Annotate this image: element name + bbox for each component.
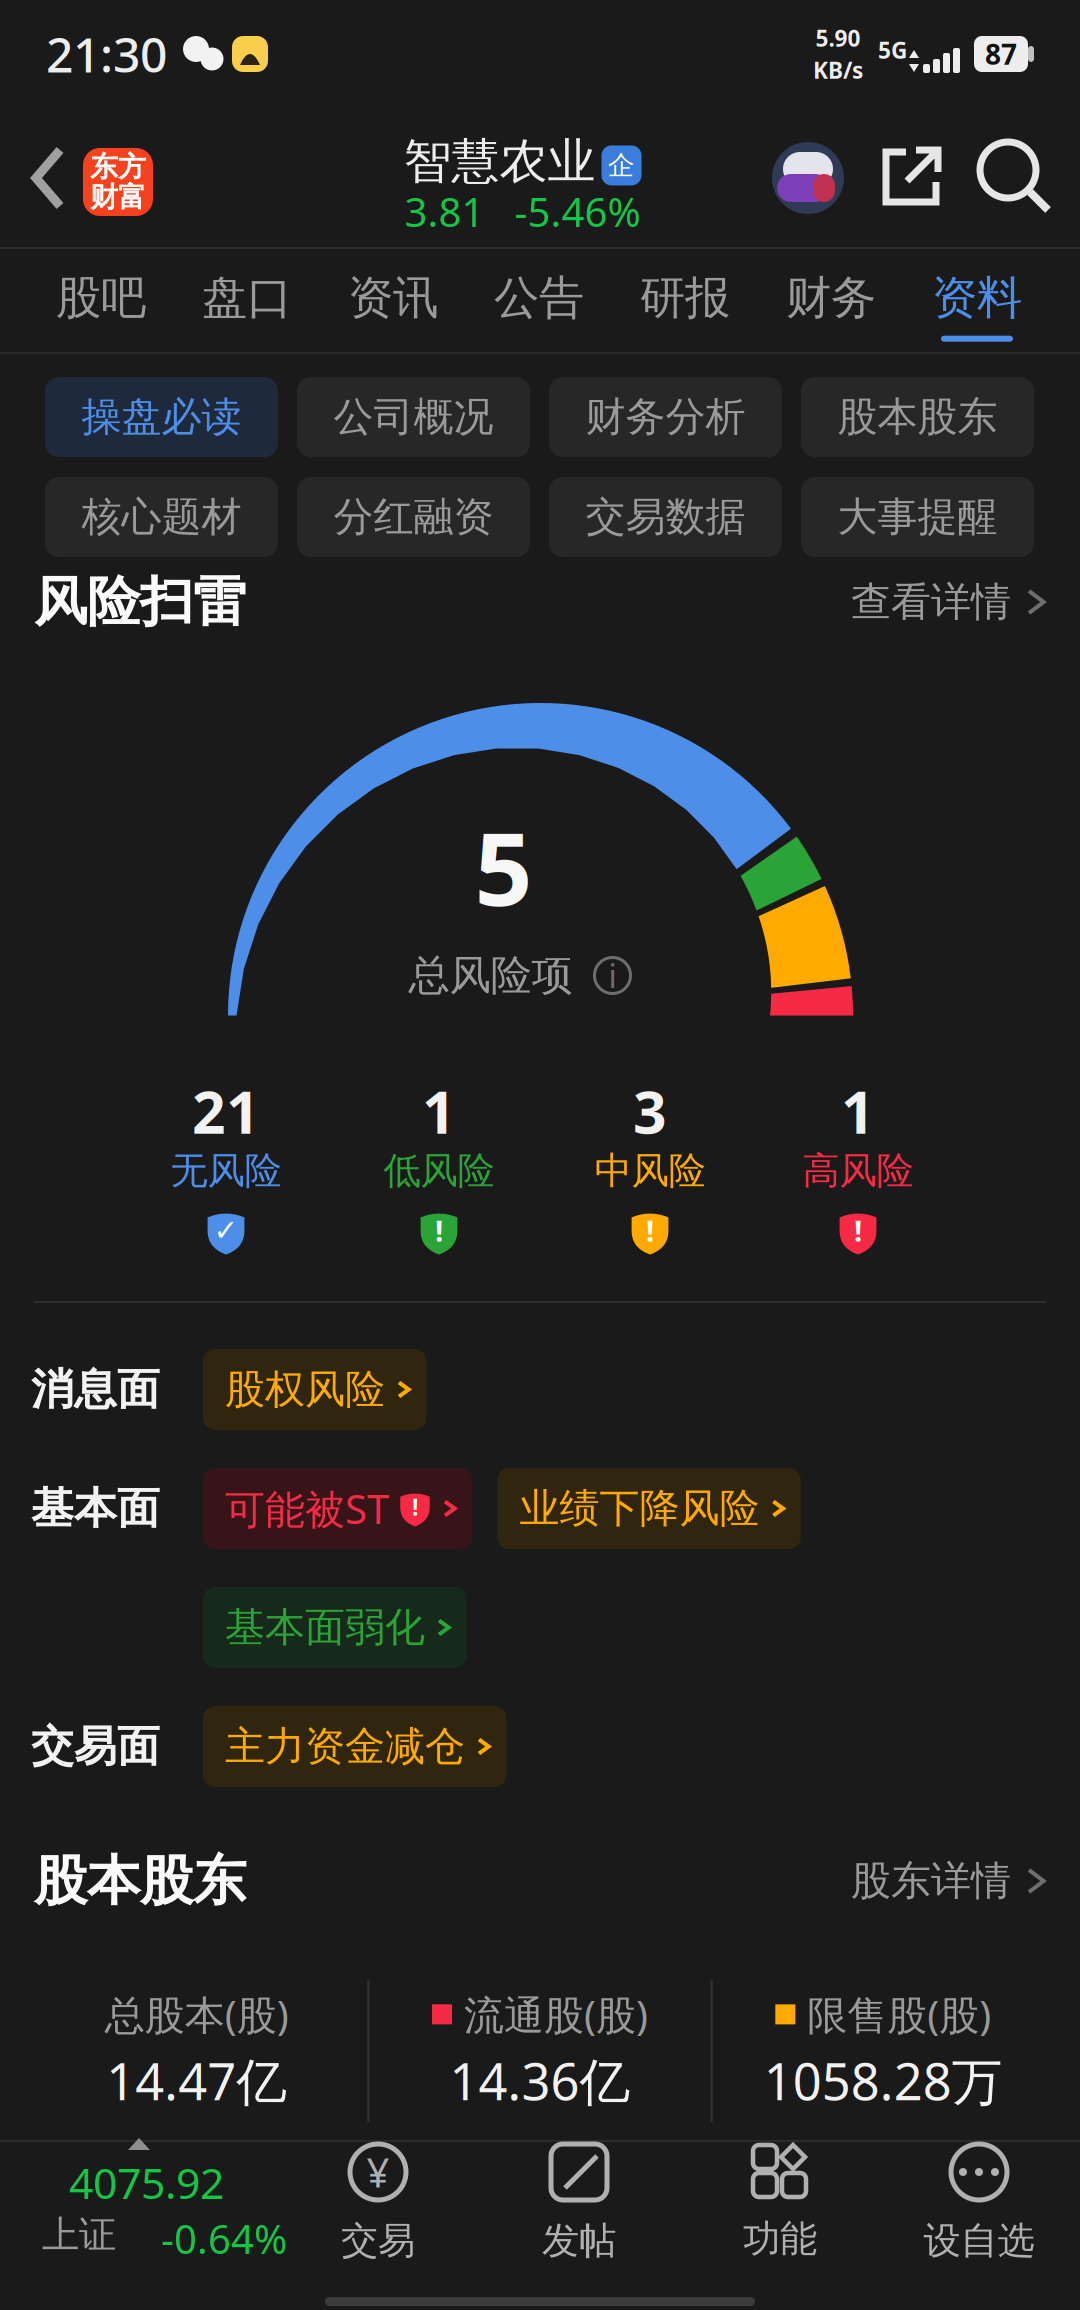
button[interactable]: 可能被ST [203,1468,472,1549]
staticText: 盘口 [202,270,292,326]
staticText: 股吧 [56,270,146,326]
staticText: 交易 [341,2218,415,2264]
staticText: 股权风险 [225,1365,385,1414]
staticText: 可能被ST [225,1482,389,1535]
button[interactable]: 交易数据 [549,477,782,557]
staticText: 5G [878,35,907,65]
staticText: KB/s [813,55,863,85]
staticText: 1 [841,1072,875,1150]
button[interactable]: 资讯 [320,270,466,342]
button[interactable]: 公司概况 [297,377,530,457]
button[interactable]: 分红融资 [297,477,530,557]
staticText: 总股本(股) [105,1988,289,2041]
staticText: 限售股(股) [807,1988,991,2041]
staticText: 股东详情 [851,1856,1011,1905]
button[interactable]: 东方财富 [83,144,153,212]
staticText: -5.46% [514,185,640,238]
staticText: 风险扫雷 [34,569,246,635]
staticText: ! [646,1211,654,1250]
staticText: 基本面 [31,1482,160,1535]
staticText: 交易面 [31,1720,160,1773]
staticText: 1058.28万 [764,2047,1003,2114]
staticText: 低风险 [383,1148,494,1194]
staticText: 股本股东 [34,1848,246,1914]
button[interactable]: 操盘必读 [45,377,278,457]
staticText: 87 [985,35,1017,73]
staticText: 21 [192,1072,260,1150]
button[interactable]: 核心题材 [45,477,278,557]
staticText: 高风险 [802,1148,913,1194]
button[interactable]: 功能 [690,2144,870,2262]
staticText: 3 [633,1072,667,1150]
button[interactable]: 返回 [28,144,70,212]
button[interactable]: 业绩下降风险 [497,1468,801,1549]
staticText: ! [854,1211,862,1250]
staticText: 核心题材 [81,492,241,541]
staticText: 操盘必读 [81,392,241,441]
button[interactable]: 分享 [844,144,980,212]
button[interactable]: 基本面弱化 [203,1587,466,1668]
staticText: 14.47亿 [106,2047,287,2114]
button[interactable]: 发帖 [489,2144,669,2264]
staticText: 智慧农业 [403,132,595,191]
button[interactable]: 搜索 [980,142,1052,214]
staticText: 业绩下降风险 [519,1484,759,1533]
staticText: 21:30 [46,22,167,86]
staticText: 交易数据 [585,492,745,541]
staticText: 公司概况 [333,392,493,441]
staticText: 消息面 [31,1363,160,1416]
button[interactable]: 智能助手 [772,142,844,214]
staticText: 大事提醒 [837,492,997,541]
staticText: ¥ [366,2145,389,2198]
button[interactable]: 股吧 [28,270,174,342]
staticText: 分红融资 [333,492,493,541]
staticText: 基本面弱化 [225,1603,425,1652]
staticText: 发帖 [542,2218,616,2264]
staticText: i [608,954,616,997]
staticText: 3.81 [404,185,484,238]
staticText: 资讯 [348,270,438,326]
staticText: 设自选 [923,2218,1034,2264]
button[interactable]: 股东详情 [851,1856,1046,1905]
staticText: 4075.92 [69,2154,224,2211]
staticText: 1 [422,1072,456,1150]
staticText: 企 [608,149,635,182]
staticText: 中风险 [594,1148,705,1194]
staticText: 5.90 [815,23,860,53]
staticText: 功能 [743,2216,817,2262]
button[interactable]: 股本股东 [801,377,1034,457]
staticText: 无风险 [170,1148,281,1194]
staticText: -0.64% [161,2212,287,2265]
staticText: 财富 [90,180,146,214]
staticText: ✓ [213,1214,238,1247]
staticText: 上证 [42,2212,116,2258]
button[interactable]: 公告 [466,270,612,342]
staticText: 流通股(股) [464,1988,648,2041]
button[interactable]: 盘口 [174,270,320,342]
staticText: 资料 [932,270,1022,326]
staticText: 东方 [90,150,146,184]
staticText: 研报 [640,270,730,326]
button[interactable]: 主力资金减仓 [203,1706,506,1787]
staticText: 主力资金减仓 [225,1722,465,1771]
staticText: ! [435,1211,443,1250]
staticText: 股本股东 [837,392,997,441]
button[interactable]: 设自选 [889,2144,1069,2264]
staticText: 14.36亿 [449,2047,630,2114]
button[interactable]: 股权风险 [203,1349,426,1430]
button[interactable]: 财务 [758,270,904,342]
staticText: 总风险项 [408,950,572,1001]
staticText: 查看详情 [851,577,1011,626]
button[interactable]: 研报 [612,270,758,342]
button[interactable]: ¥ [288,2144,468,2264]
button[interactable]: 资料 [904,270,1050,342]
staticText: 财务分析 [585,392,745,441]
button[interactable]: 查看详情 [851,577,1046,626]
staticText: ! [412,1492,418,1522]
button[interactable]: 财务分析 [549,377,782,457]
staticText: 5 [474,799,532,934]
staticText: 公告 [494,270,584,326]
button[interactable]: 大事提醒 [801,477,1034,557]
staticText: 财务 [786,270,876,326]
